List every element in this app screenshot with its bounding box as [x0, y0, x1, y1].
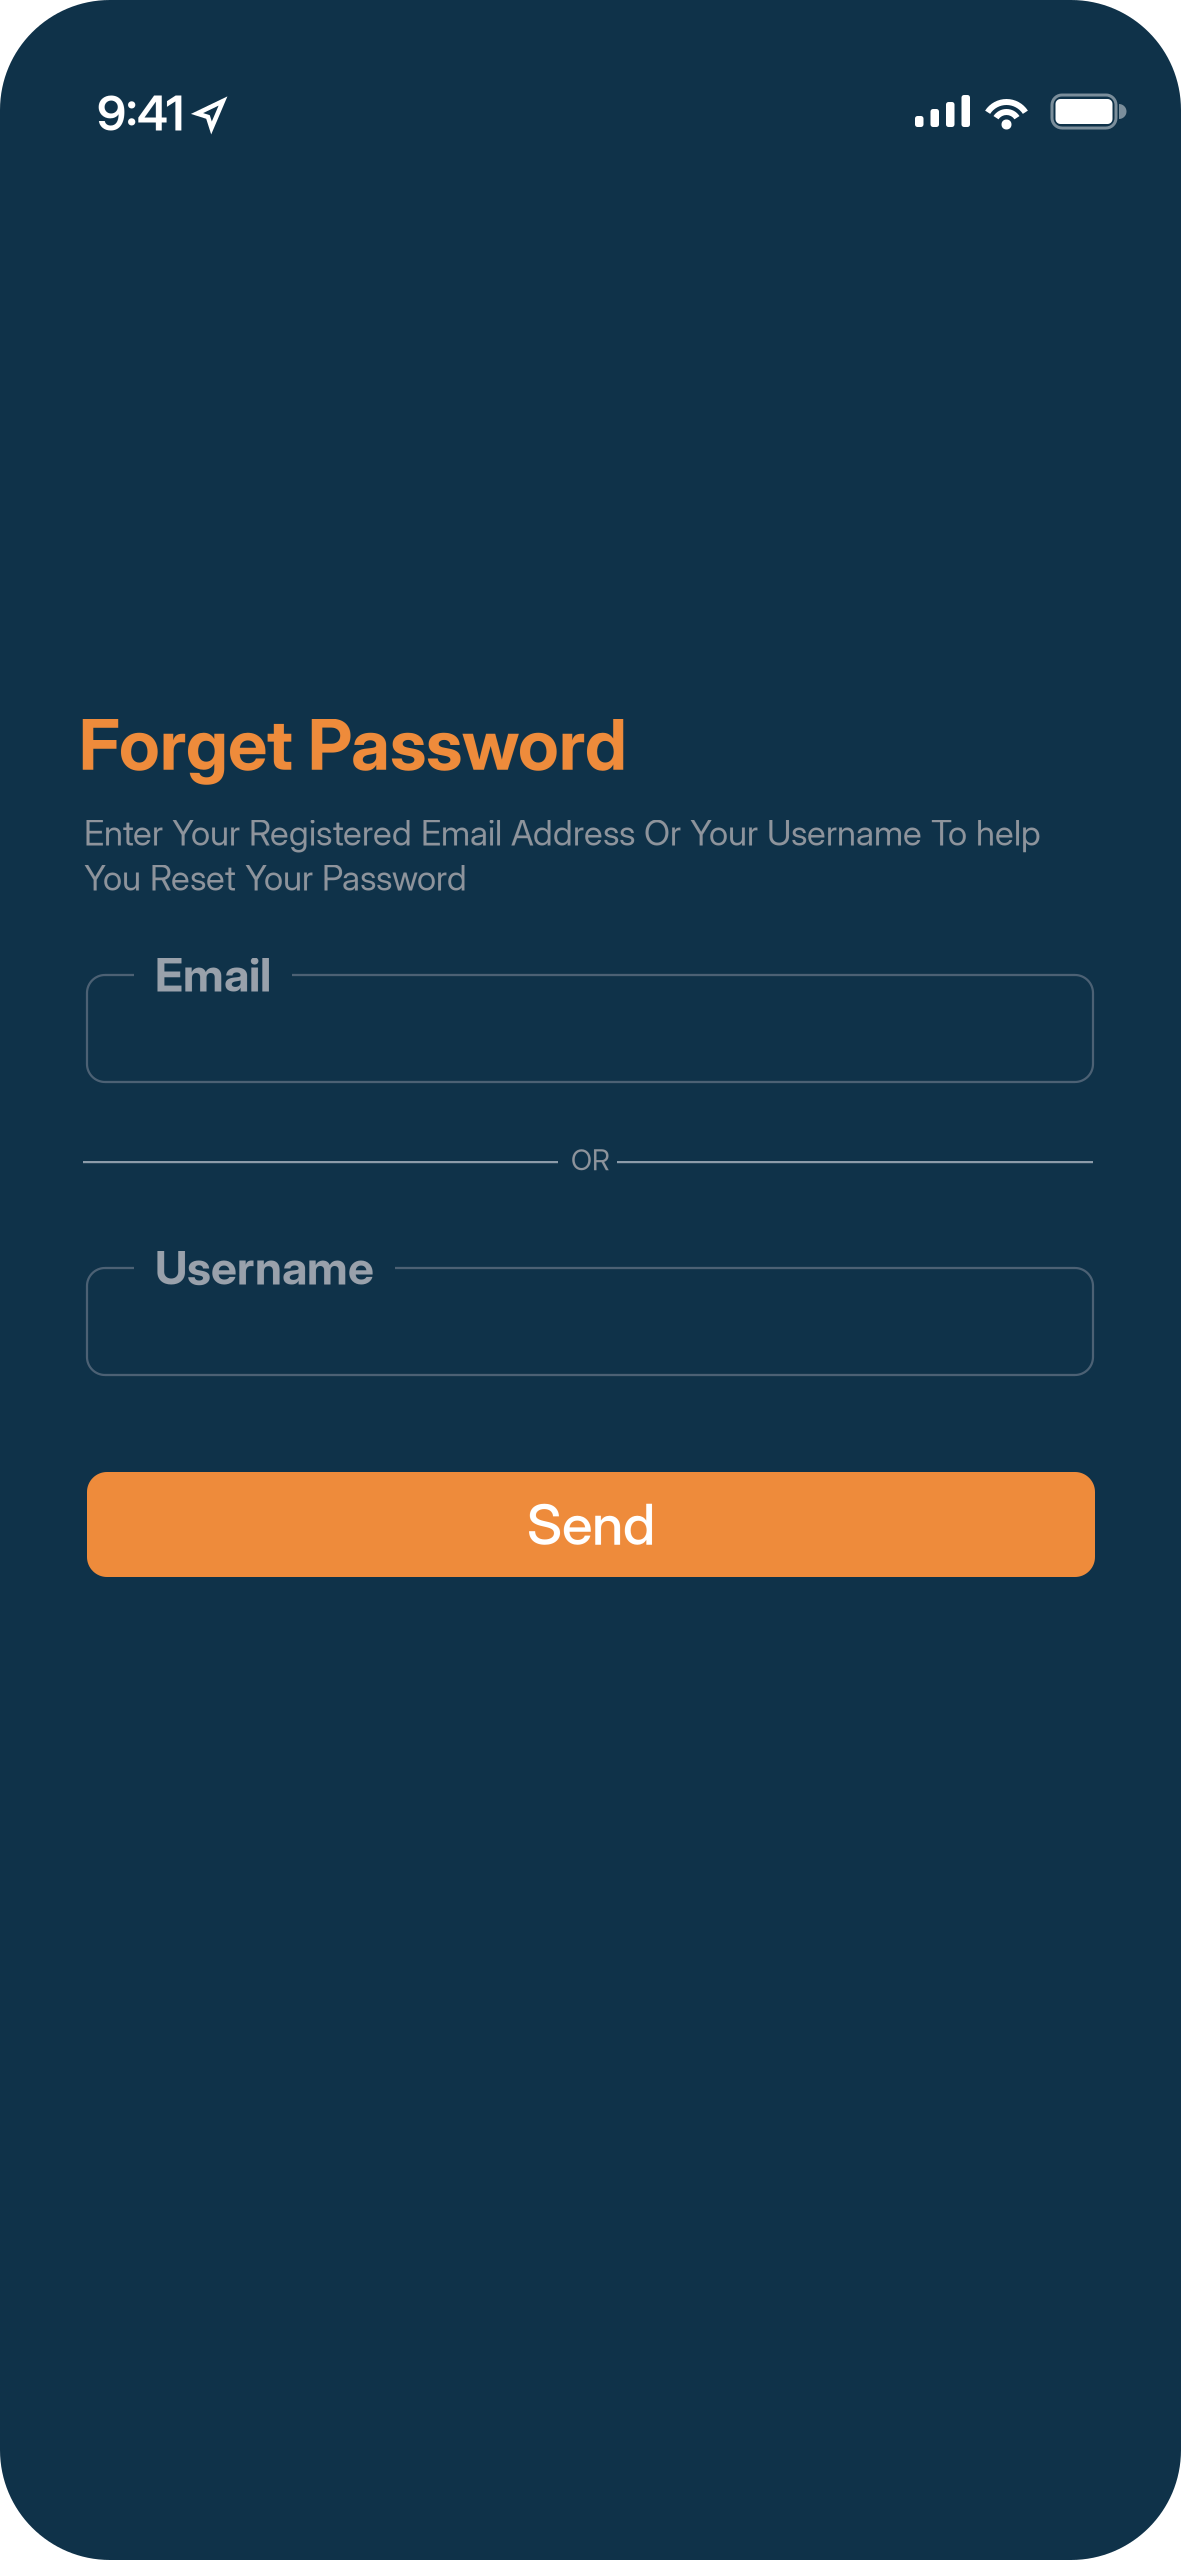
staticText: 9:41	[97, 84, 184, 142]
button[interactable]: Send	[87, 1472, 1095, 1577]
staticText: OR	[571, 1143, 610, 1177]
staticText: Email	[155, 947, 271, 1003]
button[interactable]: Username	[87, 1268, 1093, 1375]
staticText: Username	[155, 1240, 374, 1296]
staticText: Enter Your Registered Email Address Or Y…	[84, 812, 1041, 899]
button[interactable]: Email	[87, 975, 1093, 1082]
staticText: Forget Password	[79, 702, 627, 787]
staticText: Send	[527, 1491, 655, 1558]
